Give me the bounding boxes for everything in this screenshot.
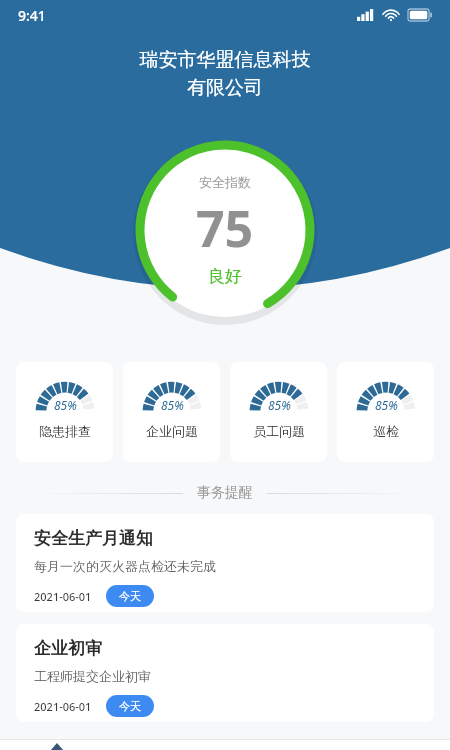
staticText: 瑞安市华盟信息科技 有限公司 <box>40 48 410 100</box>
staticText: 今天 <box>119 699 141 713</box>
staticText: 2021-06-01 <box>34 589 92 604</box>
staticText: 今天 <box>119 589 141 603</box>
button[interactable]: 85% <box>337 362 434 462</box>
staticText: 85% <box>54 397 77 413</box>
staticText: 2021-06-01 <box>34 699 92 714</box>
button[interactable]: Home <box>50 743 64 750</box>
staticText: 85% <box>268 397 291 413</box>
staticText: 良好 <box>208 266 242 287</box>
button[interactable]: 85% <box>123 362 220 462</box>
staticText: 安全生产月通知 <box>34 528 153 549</box>
staticText: 每月一次的灭火器点检还未完成 <box>34 558 216 574</box>
button[interactable]: 安全生产月通知 <box>16 514 434 612</box>
staticText: 隐患排查 <box>39 423 91 439</box>
staticText: 工程师提交企业初审 <box>34 668 151 684</box>
button[interactable]: 企业初审 <box>16 624 434 722</box>
staticText: 巡检 <box>373 423 399 439</box>
button[interactable]: 今天 <box>106 585 154 607</box>
staticText: 企业初审 <box>34 638 102 659</box>
button[interactable]: 今天 <box>106 695 154 717</box>
staticText: 9:41 <box>18 6 46 25</box>
staticText: 85% <box>161 397 184 413</box>
staticText: 员工问题 <box>253 423 305 439</box>
button[interactable]: 85% <box>16 362 113 462</box>
staticText: 安全指数 <box>199 174 251 190</box>
staticText: 75 <box>196 194 254 262</box>
staticText: 企业问题 <box>146 423 198 439</box>
button[interactable]: 85% <box>230 362 327 462</box>
staticText: 85% <box>375 397 398 413</box>
staticText: 事务提醒 <box>197 484 253 502</box>
